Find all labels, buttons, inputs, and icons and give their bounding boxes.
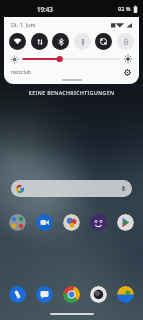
button[interactable]: Phone <box>9 286 26 303</box>
staticText: KEINE BENACHRICHTIGUNGEN <box>0 89 143 96</box>
button[interactable]: Gallery <box>117 286 134 303</box>
staticText: 19:43 <box>37 5 53 13</box>
button[interactable]: Chrome <box>63 286 80 303</box>
staticText: 92 % <box>118 5 131 13</box>
other: Brightness high <box>124 55 132 63</box>
button[interactable]: Camera <box>90 286 107 303</box>
button[interactable]: Battery saver <box>117 33 134 50</box>
button[interactable]: Duo <box>90 214 107 231</box>
button[interactable]: Google search <box>11 180 132 197</box>
staticText: Di, 1. Juni <box>11 21 36 29</box>
button[interactable]: Bluetooth <box>52 33 69 50</box>
button[interactable]: Settings <box>123 68 132 77</box>
button[interactable]: Photos <box>63 214 80 231</box>
button[interactable]: Flashlight <box>74 33 91 50</box>
button[interactable]: Play Store <box>117 214 134 231</box>
button[interactable]: Meet <box>36 214 53 231</box>
staticText: netzclub <box>11 69 31 76</box>
button[interactable]: Screen rotation <box>95 33 112 50</box>
button[interactable]: Mobile data <box>31 33 48 50</box>
button[interactable]: Brightness slider <box>22 55 120 63</box>
other: Brightness low <box>11 56 18 63</box>
button[interactable]: Messages <box>36 286 53 303</box>
button[interactable]: Wi-Fi <box>9 33 26 50</box>
button[interactable]: Folder <box>9 214 26 231</box>
button[interactable]: Expand quick settings <box>62 79 82 81</box>
